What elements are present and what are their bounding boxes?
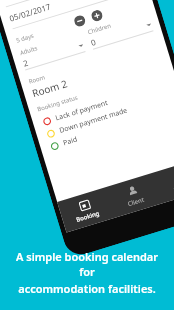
button[interactable]: 04/01/2017 [0, 0, 142, 9]
staticText: A simple booking calendar for [8, 249, 166, 279]
staticText: Booking [75, 209, 100, 224]
staticText: 2 [22, 57, 30, 69]
staticText: 0 [89, 36, 97, 48]
staticText: Lack of payment [54, 98, 110, 123]
staticText: Room [28, 73, 46, 86]
button[interactable]: Add day [90, 9, 104, 22]
staticText: Down payment made [58, 106, 129, 136]
staticText: 05/02/2017 [8, 0, 52, 24]
button[interactable]: Client [105, 173, 162, 218]
button[interactable]: Paid [39, 100, 174, 156]
button[interactable]: Remove day [73, 14, 87, 28]
button[interactable]: 05/02/2017 [0, 0, 148, 31]
staticText: Client [127, 195, 145, 208]
staticText: Details [173, 181, 174, 194]
staticText: accommodation facilities. [18, 281, 156, 296]
button[interactable]: Booking [57, 187, 114, 232]
button[interactable]: Details [153, 158, 174, 203]
button[interactable]: Down payment made [35, 87, 174, 144]
button[interactable]: 0 [89, 19, 153, 48]
button[interactable]: Lack of payment [32, 75, 174, 131]
staticText: 5 days [15, 32, 35, 45]
button[interactable]: Room [20, 37, 170, 102]
staticText: Children [87, 22, 112, 36]
staticText: Room 2 [30, 76, 69, 100]
button[interactable]: 2 [22, 40, 85, 68]
staticText: Adults [19, 44, 38, 57]
staticText: Booking status [36, 93, 80, 113]
staticText: 04/01/2017 [1, 0, 45, 2]
staticText: Paid [62, 134, 79, 148]
